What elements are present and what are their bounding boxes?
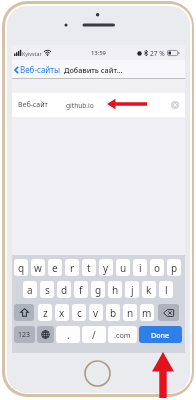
button[interactable]: r bbox=[65, 259, 79, 276]
button[interactable]: p bbox=[167, 259, 181, 276]
button[interactable]: d bbox=[57, 281, 71, 298]
staticText: m bbox=[142, 306, 152, 320]
staticText: r bbox=[70, 261, 75, 275]
button[interactable]: v bbox=[89, 304, 103, 321]
staticText: Добавить сайт... bbox=[64, 65, 123, 75]
staticText: t bbox=[87, 261, 91, 275]
staticText: g bbox=[95, 283, 102, 297]
staticText: s bbox=[45, 283, 50, 297]
staticText: f bbox=[79, 283, 83, 297]
staticText: . bbox=[67, 328, 70, 342]
button[interactable]: q bbox=[14, 259, 28, 276]
button[interactable]: n bbox=[123, 304, 137, 321]
button[interactable]: m bbox=[140, 304, 154, 321]
staticText: Веб-сайт bbox=[18, 100, 48, 110]
button[interactable]: Shift bbox=[14, 304, 34, 321]
button[interactable]: w bbox=[31, 259, 45, 276]
staticText: z bbox=[43, 306, 48, 320]
staticText: c bbox=[77, 306, 82, 320]
staticText: .com bbox=[114, 330, 131, 340]
staticText: j bbox=[131, 283, 134, 297]
staticText: w bbox=[34, 261, 42, 275]
button[interactable]: Веб-сайт bbox=[12, 93, 185, 117]
staticText: v bbox=[93, 306, 99, 320]
button[interactable]: f bbox=[74, 281, 88, 298]
staticText: 123 bbox=[18, 330, 31, 340]
staticText: o bbox=[154, 261, 161, 275]
staticText: q bbox=[18, 261, 25, 275]
button[interactable]: h bbox=[108, 281, 122, 298]
button[interactable]: z bbox=[38, 304, 52, 321]
button[interactable]: x bbox=[55, 304, 69, 321]
staticText: n bbox=[127, 306, 134, 320]
button[interactable]: Switch keyboard language bbox=[37, 326, 54, 343]
button[interactable]: k bbox=[142, 281, 156, 298]
staticText: i bbox=[139, 261, 142, 275]
button[interactable]: Done bbox=[139, 326, 182, 343]
staticText: e bbox=[52, 261, 58, 275]
staticText: a bbox=[27, 283, 33, 297]
staticText: 27 % bbox=[150, 49, 165, 57]
staticText: h bbox=[112, 283, 119, 297]
staticText: k bbox=[146, 283, 152, 297]
button[interactable]: u bbox=[116, 259, 130, 276]
staticText: x bbox=[59, 306, 65, 320]
button[interactable]: 123 bbox=[14, 326, 35, 343]
button[interactable]: i bbox=[133, 259, 147, 276]
staticText: github.io bbox=[66, 101, 94, 110]
button[interactable]: s bbox=[40, 281, 54, 298]
button[interactable]: Clear text bbox=[171, 101, 179, 109]
button[interactable]: y bbox=[99, 259, 113, 276]
staticText: d bbox=[61, 283, 68, 297]
button[interactable]: .com bbox=[108, 326, 137, 343]
button[interactable]: e bbox=[48, 259, 62, 276]
staticText: l bbox=[165, 283, 168, 297]
staticText: b bbox=[110, 306, 117, 320]
button[interactable]: g bbox=[91, 281, 105, 298]
button[interactable]: o bbox=[150, 259, 164, 276]
staticText: Веб-сайты bbox=[20, 64, 61, 75]
button[interactable]: b bbox=[106, 304, 120, 321]
staticText: y bbox=[103, 261, 109, 275]
button[interactable]: l bbox=[159, 281, 173, 298]
button[interactable]: . bbox=[56, 326, 80, 343]
button[interactable]: t bbox=[82, 259, 96, 276]
button[interactable]: Веб-сайты bbox=[14, 60, 187, 79]
staticText: Kyivstar bbox=[22, 50, 42, 57]
button[interactable]: / bbox=[82, 326, 106, 343]
staticText: Done bbox=[151, 330, 170, 340]
button[interactable]: Backspace bbox=[158, 304, 179, 321]
button[interactable]: j bbox=[125, 281, 139, 298]
button[interactable]: a bbox=[23, 281, 37, 298]
staticText: u bbox=[120, 261, 127, 275]
button[interactable]: c bbox=[72, 304, 86, 321]
staticText: p bbox=[171, 261, 178, 275]
staticText: / bbox=[92, 328, 96, 342]
staticText: 13:59 bbox=[91, 49, 106, 57]
